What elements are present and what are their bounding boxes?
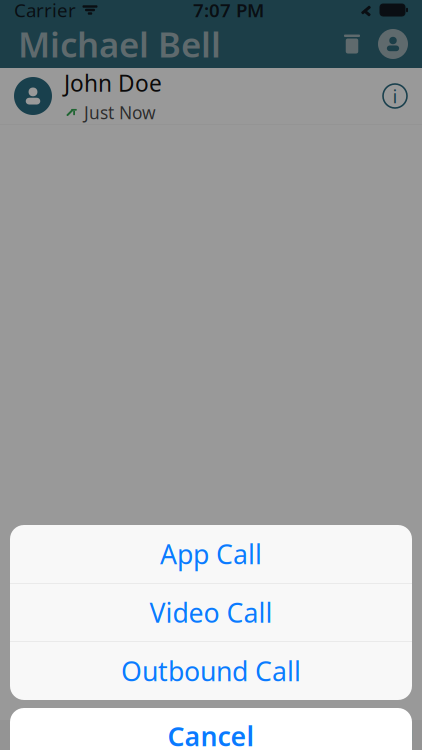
staticText: Outbound Call bbox=[121, 653, 301, 689]
staticText: Just Now bbox=[84, 101, 156, 124]
button[interactable]: Contacts bbox=[169, 720, 253, 750]
staticText: John Doe bbox=[64, 68, 162, 98]
button[interactable]: Delete bbox=[332, 22, 372, 66]
button[interactable]: Keypad bbox=[0, 720, 84, 750]
button[interactable]: Cancel bbox=[10, 708, 412, 750]
button[interactable]: Voicemail bbox=[338, 720, 422, 750]
button[interactable]: Outbound Call bbox=[10, 642, 412, 700]
staticText: Cancel bbox=[167, 718, 254, 750]
staticText: Michael Bell bbox=[18, 21, 221, 67]
staticText: App Call bbox=[160, 536, 262, 572]
staticText: Carrier bbox=[14, 0, 76, 22]
staticText: Video Call bbox=[149, 595, 272, 630]
staticText: i bbox=[392, 84, 397, 108]
button[interactable]: Video Call bbox=[10, 583, 412, 641]
staticText: Contacts bbox=[181, 725, 240, 745]
staticText: Voicemail bbox=[346, 725, 413, 745]
staticText: 7:07 PM bbox=[193, 0, 264, 22]
button[interactable]: John Doe bbox=[0, 68, 422, 124]
button[interactable]: Account bbox=[372, 22, 414, 66]
button[interactable]: App Call bbox=[10, 525, 412, 583]
